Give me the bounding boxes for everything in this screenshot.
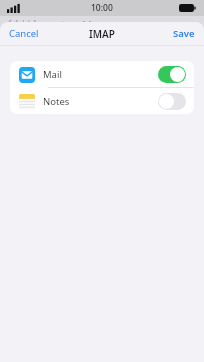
staticText: Notes — [43, 95, 158, 108]
button[interactable]: Notes — [10, 88, 194, 114]
button[interactable]: Cancel — [3, 24, 45, 43]
staticText: Mail — [43, 68, 158, 81]
staticText: 10:00 — [91, 2, 113, 14]
button[interactable]: Toggle on — [158, 66, 186, 83]
button[interactable]: Mail — [10, 61, 194, 87]
staticText: IMAP — [89, 27, 115, 41]
staticText: Save — [173, 27, 195, 40]
staticText: Add Account — [73, 18, 132, 31]
staticText: Cancel — [9, 27, 39, 40]
button[interactable]: Toggle off — [158, 93, 186, 110]
staticText: Add Account — [14, 18, 65, 30]
button[interactable]: Save — [167, 24, 201, 43]
